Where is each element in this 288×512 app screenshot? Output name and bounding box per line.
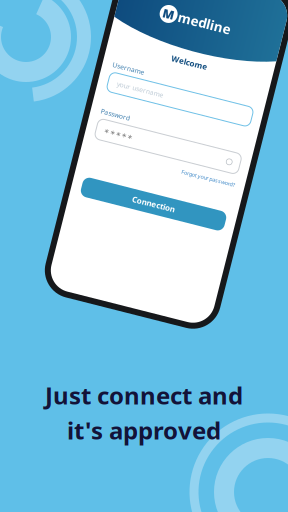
staticText: Username: [95, 76, 128, 85]
staticText: Password: [95, 124, 125, 133]
staticText: Connection: [147, 201, 191, 211]
staticText: Forgot your password?: [188, 164, 243, 171]
button[interactable]: Forgot your password?: [95, 164, 243, 171]
staticText: Welcome: [150, 55, 187, 65]
staticText: your username: [104, 94, 152, 102]
staticText: Just connect and: [45, 379, 243, 411]
staticText: medline: [147, 9, 201, 27]
staticText: it's approved: [67, 414, 221, 446]
staticText: ∗∗∗∗∗: [103, 143, 133, 150]
button[interactable]: Connection: [95, 196, 243, 216]
